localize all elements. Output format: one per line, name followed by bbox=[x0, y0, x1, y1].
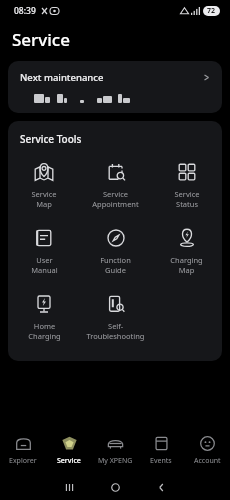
staticText: Explorer bbox=[9, 456, 37, 466]
staticText: Service bbox=[57, 456, 81, 466]
other: Home bbox=[110, 482, 121, 493]
button[interactable]: Account bbox=[184, 426, 230, 474]
button[interactable]: Charging Map bbox=[151, 226, 222, 277]
button[interactable]: Events bbox=[138, 426, 184, 474]
staticText: Next maintenance bbox=[20, 71, 104, 84]
button[interactable]: Service bbox=[46, 426, 92, 474]
staticText: Service Appointment bbox=[92, 189, 139, 209]
staticText: User Manual bbox=[31, 255, 58, 275]
staticText: Charging Map bbox=[170, 255, 203, 275]
staticText: Service Status bbox=[174, 189, 200, 209]
staticText: Service Map bbox=[31, 189, 57, 209]
button[interactable]: Home Charging bbox=[8, 292, 80, 343]
button[interactable]: Next maintenance bbox=[8, 61, 222, 113]
button[interactable]: Service Appointment bbox=[80, 160, 151, 211]
staticText: Function Guide bbox=[100, 255, 131, 275]
button[interactable]: Function Guide bbox=[80, 226, 151, 277]
staticText: Events bbox=[150, 456, 172, 466]
other: Recent apps bbox=[64, 482, 75, 493]
button[interactable]: User Manual bbox=[8, 226, 80, 277]
staticText: 08:39 bbox=[14, 5, 36, 17]
staticText: Service bbox=[12, 28, 70, 51]
staticText: 72 bbox=[207, 6, 216, 16]
staticText: My XPENG bbox=[98, 456, 133, 466]
staticText: Self-Troubleshooting bbox=[82, 321, 149, 341]
staticText: Home Charging bbox=[28, 321, 61, 341]
staticText: Service Tools bbox=[20, 132, 82, 146]
button[interactable]: Explorer bbox=[0, 426, 46, 474]
button[interactable]: Service Status bbox=[151, 160, 222, 211]
button[interactable]: My XPENG bbox=[92, 426, 138, 474]
staticText: Account bbox=[194, 456, 221, 466]
other: Back bbox=[156, 482, 167, 493]
button[interactable]: Self-Troubleshooting bbox=[80, 292, 151, 343]
button[interactable]: Service Map bbox=[8, 160, 80, 211]
